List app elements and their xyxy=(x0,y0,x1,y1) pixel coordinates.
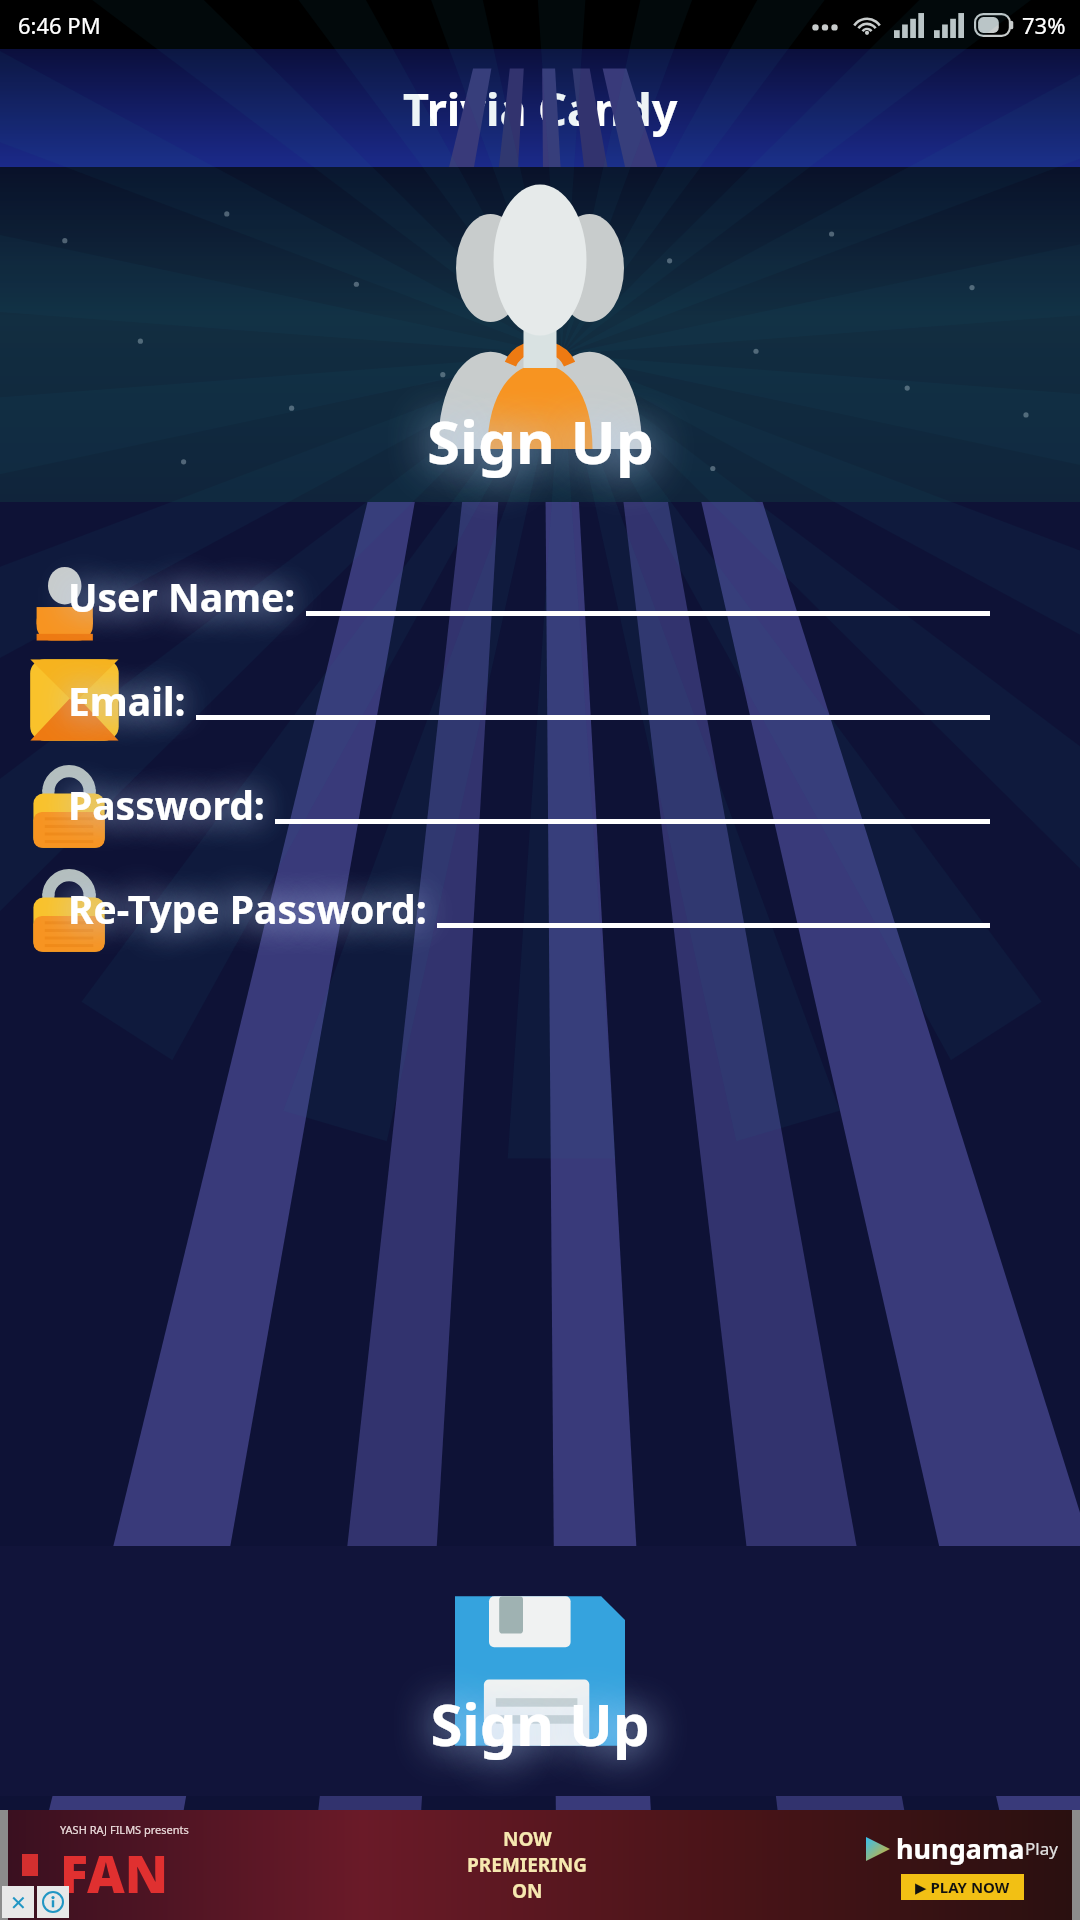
staticText: Email: xyxy=(68,674,186,727)
button[interactable]: User Name: xyxy=(0,544,1080,648)
button[interactable]: Re-Type Password: xyxy=(0,856,1080,960)
staticText: NOW xyxy=(503,1826,552,1852)
staticText: PREMIERING xyxy=(467,1852,587,1878)
staticText: Password: xyxy=(68,778,265,831)
staticText: Play xyxy=(1025,1837,1058,1860)
staticText: 73% xyxy=(1022,10,1066,40)
staticText: YASH RAJ FILMS presents xyxy=(60,1822,189,1837)
button[interactable]: Close ad xyxy=(2,1886,34,1918)
staticText: User Name: xyxy=(68,570,296,623)
staticText: Re-Type Password: xyxy=(68,882,427,935)
staticText: ✕ xyxy=(10,1891,27,1914)
staticText: 6:46 PM xyxy=(18,10,101,40)
button[interactable]: YASH RAJ FILMS presents xyxy=(8,1810,1072,1920)
staticText: hungama xyxy=(896,1830,1025,1867)
button[interactable]: Sign Up xyxy=(390,1578,690,1764)
staticText: FAN xyxy=(60,1837,169,1908)
staticText: Sign Up xyxy=(427,400,654,482)
button[interactable]: Ad info xyxy=(37,1886,69,1918)
staticText: ▶ PLAY NOW xyxy=(915,1877,1010,1897)
staticText: ON xyxy=(512,1878,543,1904)
staticText: Sign Up xyxy=(430,1684,650,1763)
button[interactable]: Password: xyxy=(0,752,1080,856)
button[interactable]: Email: xyxy=(0,648,1080,752)
staticText: Trivia Candy xyxy=(403,78,678,139)
